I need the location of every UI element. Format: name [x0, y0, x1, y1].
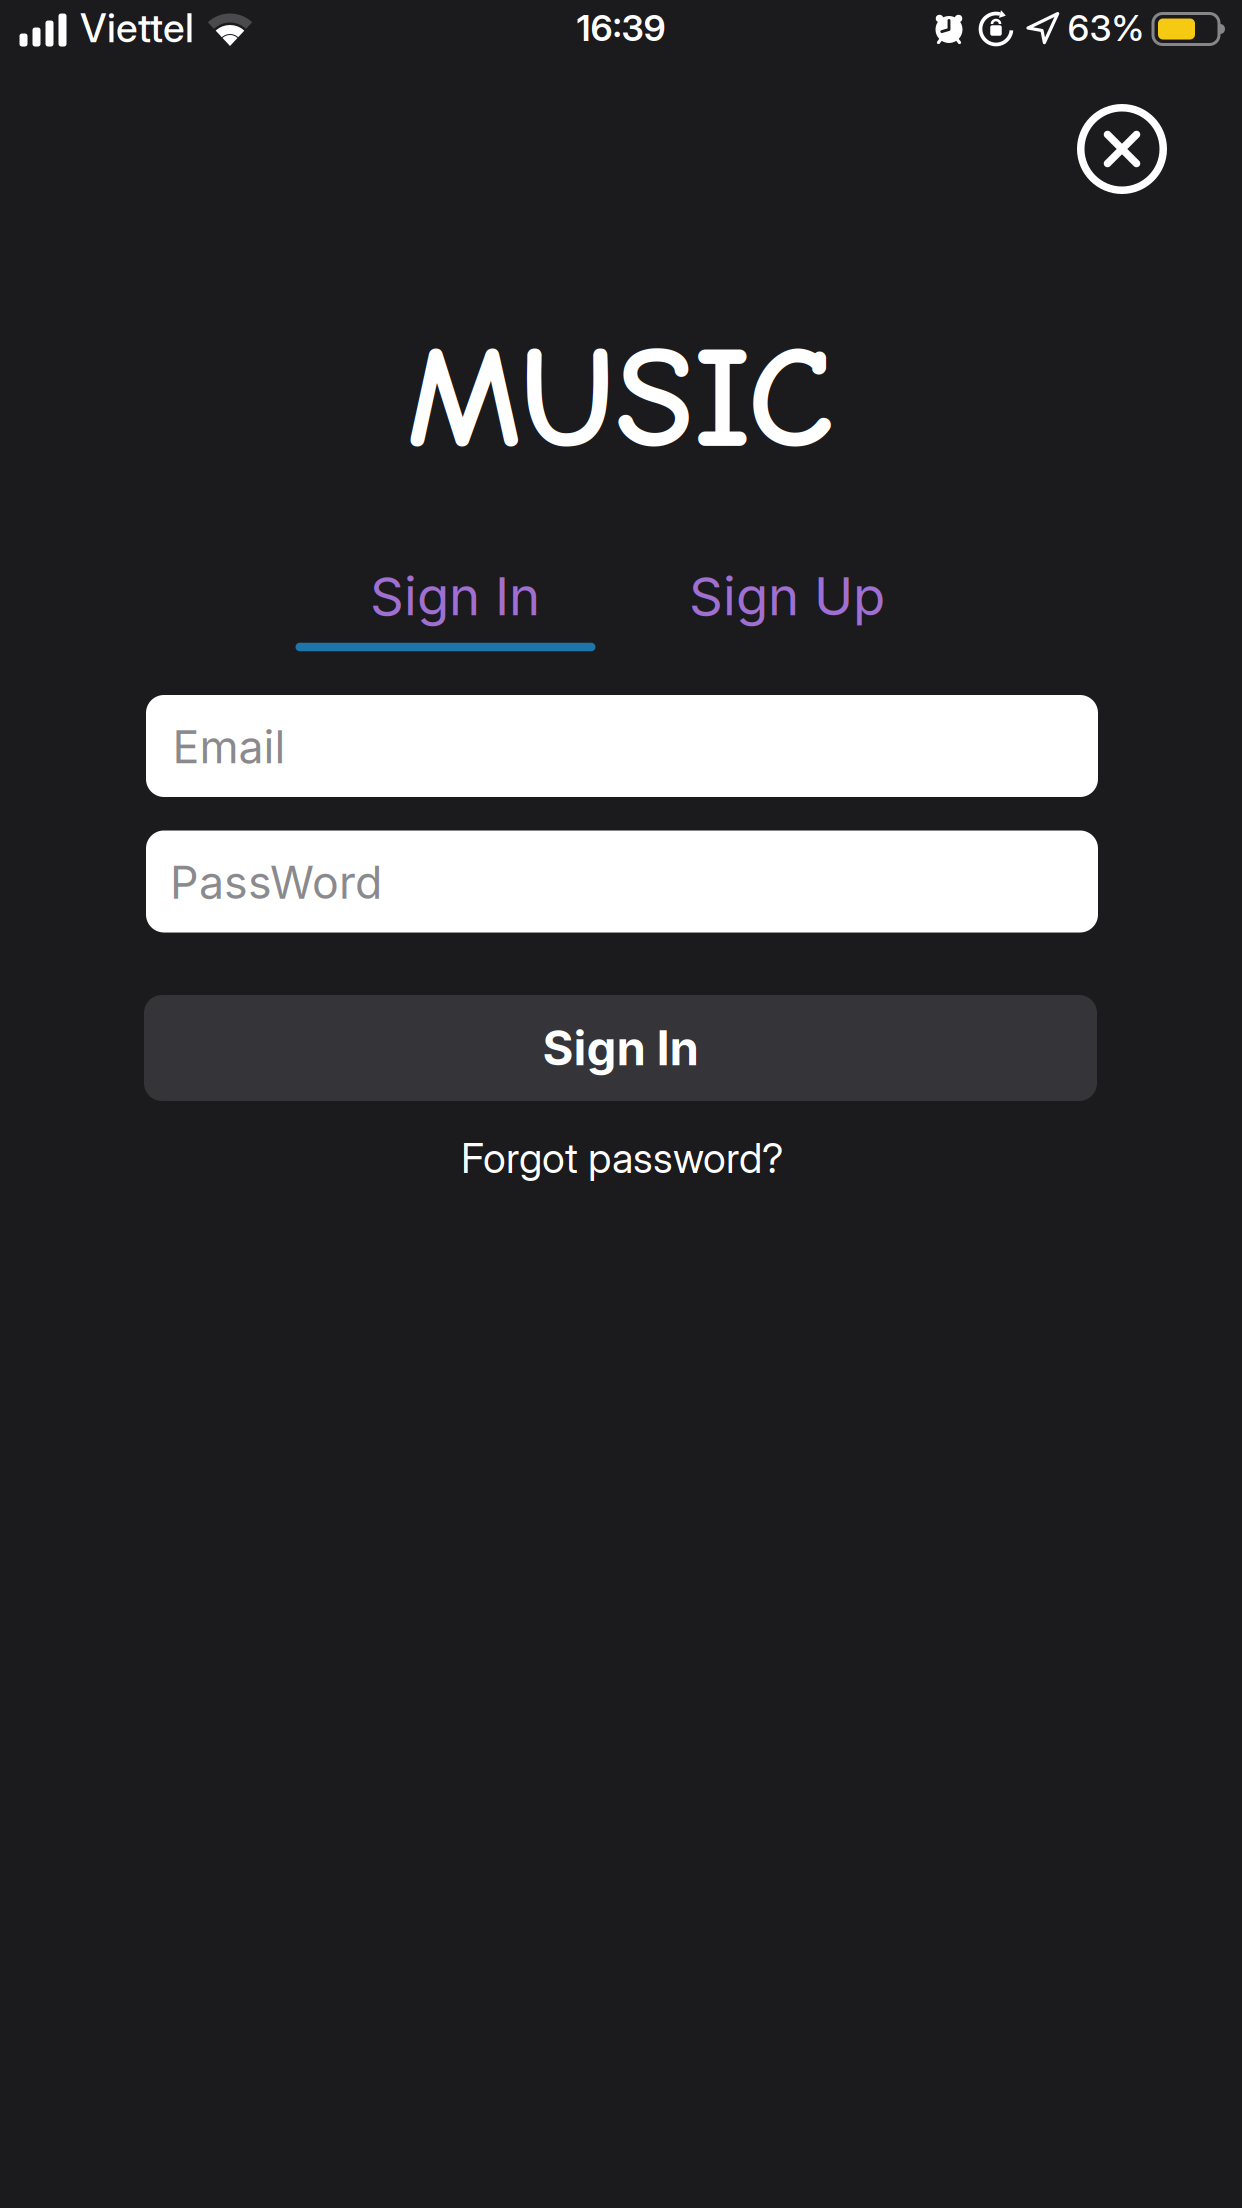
- staticText: Forgot password?: [461, 1133, 783, 1183]
- button[interactable]: Sign In: [305, 556, 605, 636]
- staticText: Viettel: [80, 4, 194, 52]
- staticText: 16:39: [576, 6, 665, 50]
- button[interactable]: Close: [1077, 104, 1167, 194]
- button[interactable]: Sign In: [144, 995, 1097, 1101]
- staticText: Sign Up: [689, 564, 885, 628]
- staticText: Sign In: [370, 564, 540, 628]
- staticText: PassWord: [170, 855, 382, 909]
- staticText: 63%: [1067, 6, 1144, 50]
- staticText: Email: [172, 720, 285, 774]
- button[interactable]: Forgot password?: [272, 1123, 972, 1193]
- staticText: Sign In: [542, 1019, 698, 1077]
- staticText: MUSIC: [406, 317, 833, 481]
- button[interactable]: Sign Up: [637, 556, 937, 636]
